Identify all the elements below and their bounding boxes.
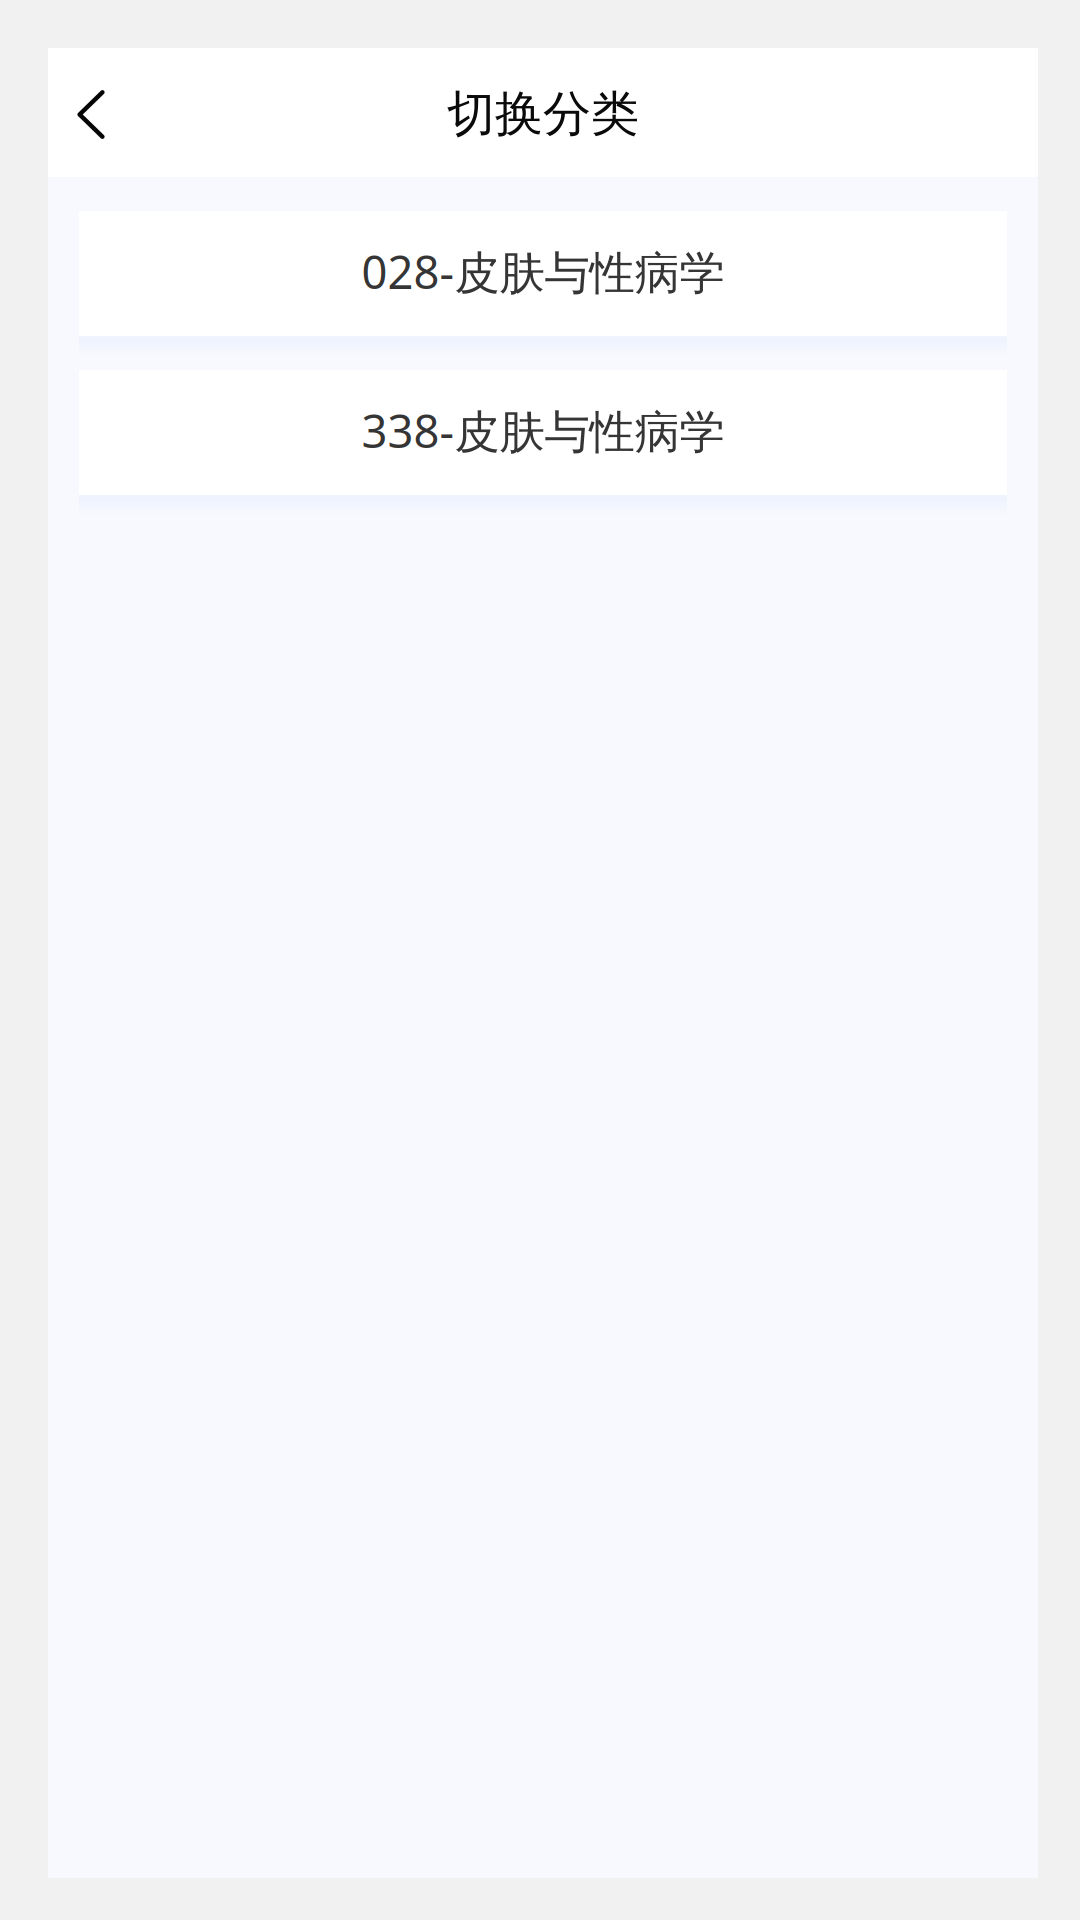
button[interactable]: 338-皮肤与性病学	[79, 370, 1007, 495]
button[interactable]: Back	[48, 48, 134, 177]
button[interactable]: 028-皮肤与性病学	[79, 211, 1007, 336]
staticText: 028-皮肤与性病学	[361, 241, 724, 302]
staticText: 338-皮肤与性病学	[361, 400, 724, 461]
staticText: 切换分类	[447, 84, 639, 143]
